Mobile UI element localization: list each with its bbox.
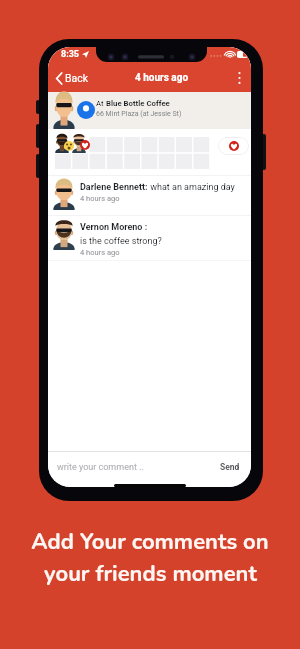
button[interactable]: write your comment .. [48, 452, 251, 482]
staticText: Send [220, 462, 240, 472]
staticText: 4 hours ago [80, 248, 120, 257]
staticText: Add Your comments on [31, 527, 269, 557]
button[interactable]: Send [218, 460, 242, 474]
button[interactable]: Back [48, 67, 97, 89]
staticText: your friends moment [44, 559, 257, 589]
button[interactable]: Like [218, 137, 249, 155]
button[interactable]: Vernon Moreno : [48, 216, 251, 260]
button[interactable]: More options [227, 65, 251, 91]
button[interactable]: Darlene Bennett: [48, 176, 251, 215]
staticText: 4 hours ago [80, 194, 120, 203]
staticText: 66 Mint Plaza (at Jessie St) [96, 110, 182, 118]
staticText: what an amazing day [148, 182, 235, 193]
staticText: Back [65, 72, 89, 84]
staticText: is the coffee strong? [80, 236, 162, 247]
staticText: write your comment .. [57, 462, 144, 473]
staticText: Vernon Moreno : [80, 222, 148, 233]
staticText: At [96, 99, 106, 108]
staticText: 4 hours ago [135, 72, 189, 84]
staticText: Darlene Bennett: [80, 182, 148, 193]
staticText: Blue Bottle Coffee [106, 99, 170, 108]
staticText: 8:35 [61, 49, 80, 60]
